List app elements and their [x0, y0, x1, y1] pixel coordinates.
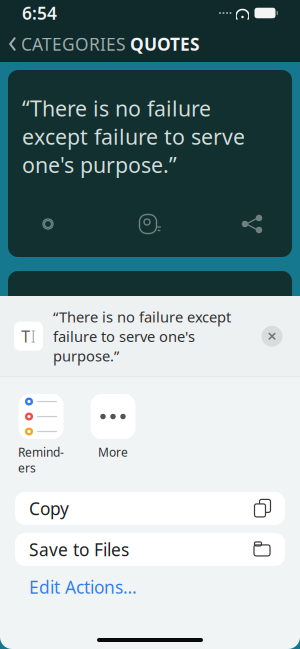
button[interactable]: Speak quote	[122, 207, 178, 241]
staticText: Reminders	[18, 444, 64, 476]
staticText: CATEGORIES	[21, 32, 126, 55]
staticText: 6:54	[22, 1, 57, 24]
staticText: “There is no failure except failure to s…	[53, 307, 231, 365]
button[interactable]: Share	[224, 207, 280, 241]
staticText: I	[31, 326, 36, 347]
staticText: More	[98, 444, 128, 460]
staticText: “A revolution ... lasting desire ...”	[36, 295, 263, 352]
button[interactable]: Edit Actions…	[15, 574, 285, 600]
button[interactable]: Mark as read	[20, 207, 76, 241]
staticText: Edit Actions…	[29, 575, 137, 598]
staticText: Save to Files	[29, 538, 129, 561]
button[interactable]: Copy	[15, 492, 285, 525]
button[interactable]: More	[87, 394, 139, 460]
staticText: Copy	[29, 497, 69, 520]
staticText: T	[21, 326, 30, 347]
button[interactable]: Reminders	[15, 394, 67, 476]
button[interactable]: CATEGORIES	[0, 24, 126, 63]
staticText: “There is no failure except failure to s…	[22, 94, 245, 179]
button[interactable]: Save to Files	[15, 533, 285, 566]
staticText: QUOTES	[130, 32, 200, 55]
button[interactable]: Close	[258, 322, 286, 350]
